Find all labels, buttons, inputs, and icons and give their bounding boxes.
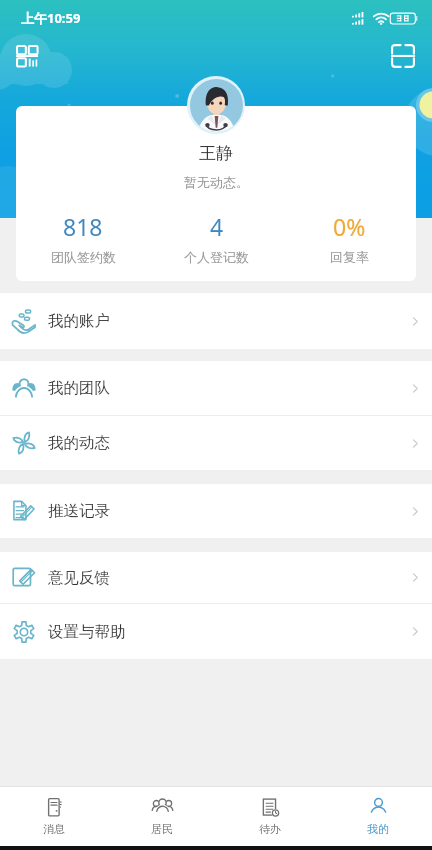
staticText: 王静 (199, 143, 233, 164)
button[interactable]: 4 (150, 211, 283, 265)
staticText: 0% (333, 211, 366, 242)
staticText: 推送记录 (48, 501, 110, 521)
staticText: 上午10:59 (21, 9, 81, 27)
staticText: 消息 (43, 822, 65, 836)
button[interactable]: 818 (16, 211, 150, 265)
button[interactable]: 设置与帮助 (0, 604, 432, 659)
staticText: 暂无动态。 (184, 174, 249, 190)
staticText: 我的 (367, 822, 389, 836)
staticText: 我的账户 (48, 311, 110, 331)
staticText: 设置与帮助 (48, 622, 126, 642)
button[interactable]: 0% (283, 211, 416, 265)
button[interactable]: 我的 (324, 787, 432, 846)
button[interactable]: Profile avatar (187, 76, 245, 134)
staticText: 4 (210, 211, 224, 242)
button[interactable]: 居民 (108, 787, 216, 846)
button[interactable]: 王静 (16, 106, 416, 281)
button[interactable]: 意见反馈 (0, 552, 432, 603)
button[interactable]: 推送记录 (0, 484, 432, 538)
staticText: 我的动态 (48, 433, 110, 453)
staticText: 意见反馈 (48, 568, 110, 588)
button[interactable]: 我的动态 (0, 416, 432, 470)
staticText: 待办 (259, 822, 281, 836)
staticText: 团队签约数 (51, 249, 116, 265)
staticText: 818 (63, 211, 103, 242)
staticText: 我的团队 (48, 378, 110, 398)
button[interactable]: Scan QR code (5, 34, 49, 78)
button[interactable]: Scan (381, 34, 425, 78)
staticText: 居民 (151, 822, 173, 836)
button[interactable]: 我的团队 (0, 361, 432, 415)
button[interactable]: 我的账户 (0, 293, 432, 349)
staticText: 个人登记数 (184, 249, 249, 265)
staticText: 回复率 (330, 249, 369, 265)
button[interactable]: 待办 (216, 787, 324, 846)
button[interactable]: 消息 (0, 787, 108, 846)
